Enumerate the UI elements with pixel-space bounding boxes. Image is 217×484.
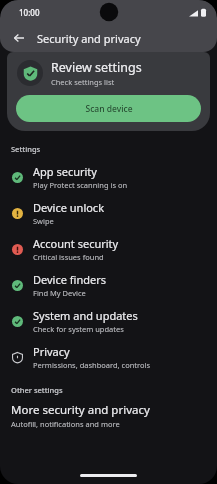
staticText: Find My Device: [33, 288, 86, 298]
staticText: Check for system updates: [33, 324, 124, 334]
staticText: Review settings: [51, 59, 142, 76]
staticText: Settings: [11, 144, 41, 154]
button[interactable]: App security: [0, 159, 217, 195]
button[interactable]: Account security: [0, 231, 217, 267]
staticText: Critical issues found: [33, 252, 104, 262]
staticText: Device unlock: [33, 200, 105, 215]
button[interactable]: Privacy: [0, 339, 217, 375]
staticText: System and updates: [33, 308, 138, 323]
staticText: Permissions, dashboard, controls: [33, 360, 151, 370]
button[interactable]: Device unlock: [0, 195, 217, 231]
staticText: Autofill, notifications and more: [11, 419, 120, 429]
staticText: Device finders: [33, 272, 106, 287]
staticText: Other settings: [11, 385, 63, 395]
staticText: More security and privacy: [11, 402, 150, 418]
staticText: App security: [33, 164, 97, 179]
staticText: Play Protect scanning is on: [33, 180, 128, 190]
button[interactable]: Device finders: [0, 267, 217, 303]
staticText: Scan device: [85, 103, 133, 115]
button[interactable]: System and updates: [0, 303, 217, 339]
button[interactable]: Scan device: [16, 95, 201, 122]
staticText: Security and privacy: [37, 31, 141, 46]
button[interactable]: More security and privacy: [0, 398, 217, 433]
staticText: 10:00: [19, 7, 40, 18]
staticText: Swipe: [33, 216, 54, 226]
staticText: Privacy: [33, 344, 70, 359]
staticText: Account security: [33, 236, 119, 251]
staticText: Check settings list: [51, 77, 115, 87]
button[interactable]: Back: [8, 27, 30, 49]
